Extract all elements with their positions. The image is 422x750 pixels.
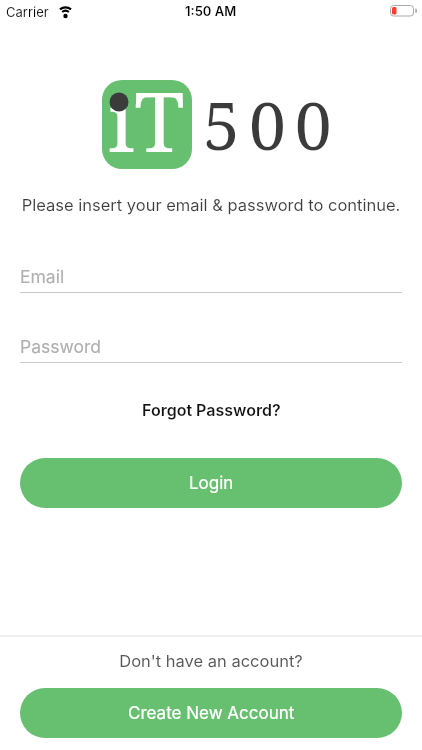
staticText: Email [20,266,65,287]
staticText: Password [20,336,101,357]
staticText: Create New Account [128,703,295,724]
button[interactable]: Email [20,262,402,293]
staticText: Login [189,473,234,494]
staticText: 500 [203,79,341,169]
staticText: Carrier [6,4,49,20]
button[interactable]: Login [20,458,402,508]
button[interactable]: Create New Account [20,688,402,738]
button[interactable]: Password [20,332,402,363]
staticText: Forgot Password? [142,400,281,419]
button[interactable]: Forgot Password? [142,396,281,415]
staticText: Don't have an account? [0,651,422,671]
staticText: 1:50 AM [185,3,237,19]
staticText: ıT [108,80,185,153]
staticText: Please insert your email & password to c… [0,195,422,215]
